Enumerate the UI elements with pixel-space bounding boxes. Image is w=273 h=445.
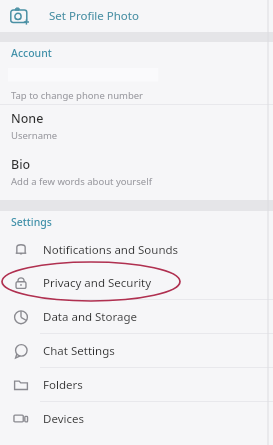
staticText: None xyxy=(11,110,44,127)
staticText: Folders xyxy=(43,377,83,393)
other: Set Profile Photo xyxy=(10,6,30,26)
staticText: Chat Settings xyxy=(43,343,115,359)
staticText: Privacy and Security xyxy=(43,275,152,291)
button[interactable]: Tap to change phone number xyxy=(0,86,273,104)
button[interactable]: Devices xyxy=(0,402,273,435)
button[interactable]: Notifications and Sounds xyxy=(0,233,273,266)
staticText: Notifications and Sounds xyxy=(43,242,179,258)
button[interactable]: Data and Storage xyxy=(0,300,273,333)
staticText: Data and Storage xyxy=(43,309,138,325)
button[interactable]: None xyxy=(0,105,273,146)
button[interactable]: Privacy and Security xyxy=(0,266,273,299)
staticText: Add a few words about yourself xyxy=(11,175,152,188)
staticText: Bio xyxy=(11,156,31,173)
staticText: Settings xyxy=(11,215,52,229)
staticText: Username xyxy=(11,129,58,142)
button[interactable]: Bio xyxy=(0,151,273,192)
staticText: Set Profile Photo xyxy=(49,8,139,24)
staticText: Account xyxy=(11,46,52,60)
staticText: Devices xyxy=(43,411,84,427)
button[interactable]: Folders xyxy=(0,368,273,401)
button[interactable]: Set Profile Photo xyxy=(0,0,273,32)
button[interactable]: Chat Settings xyxy=(0,334,273,367)
staticText: Tap to change phone number xyxy=(11,89,144,102)
